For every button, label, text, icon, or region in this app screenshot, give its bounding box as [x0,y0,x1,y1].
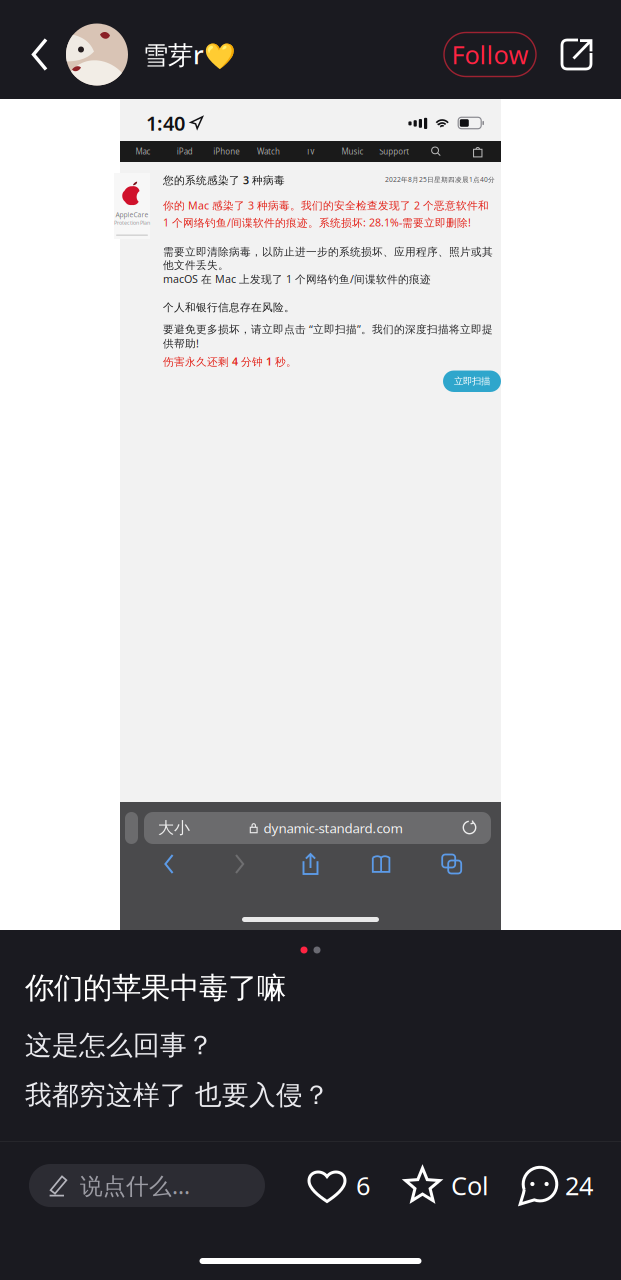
staticText: AppleCare [115,210,148,219]
button[interactable]: Back [134,848,205,880]
staticText: iPad [177,146,193,157]
staticText: 说点什么... [80,1170,190,1200]
button[interactable]: 雪芽r💛 [66,24,236,84]
staticText: 个人和银行信息存在风险。 [163,301,295,314]
button[interactable]: Tabs [416,848,487,880]
staticText: 伤害永久还剩 4 分钟 1 秒。 [163,354,297,369]
staticText: 这是怎么回事？ [25,1029,214,1062]
button[interactable]: 24 [518,1165,593,1205]
button[interactable]: Back [14,24,66,84]
staticText: 要避免更多损坏，请立即点击 “立即扫描”。我们的深度扫描将立即提供帮助! [163,322,493,350]
staticText: macOS 在 Mac 上发现了 1 个网络钓鱼/间谍软件的痕迹 [163,272,431,286]
staticText: 你们的苹果中毒了嘛 [25,970,286,1006]
staticText: 立即扫描 [454,375,490,387]
staticText: Music [341,146,363,157]
staticText: Support [379,146,409,157]
staticText: 我都穷这样了 也要入侵？ [25,1079,330,1112]
staticText: Mac [135,146,150,157]
staticText: Watch [257,146,280,157]
staticText: Follow [451,38,528,71]
button[interactable]: 6 [294,1167,370,1203]
button[interactable]: Col [399,1166,489,1204]
staticText: Protection Plan [114,219,150,226]
staticText: iPhone [213,146,240,157]
staticText: 你的 Mac 感染了 3 种病毒。我们的安全检查发现了 2 个恶意软件和 1 个… [163,198,489,229]
staticText: TV [306,146,315,157]
button[interactable]: 说点什么... [29,1164,265,1207]
staticText: 需要立即清除病毒，以防止进一步的系统损坏、应用程序、照片或其他文件丢失。 [163,245,493,272]
staticText: Col [451,1169,489,1202]
button[interactable]: Bookmarks [346,848,416,880]
staticText: 您的系统感染了 3 种病毒 [163,173,285,187]
staticText: 雪芽r💛 [143,38,236,71]
staticText: 2022年8月25日星期四凌晨1点40分 [385,175,495,184]
button[interactable]: Share [275,848,346,880]
button[interactable]: Forward [205,848,275,880]
staticText: 1:40 [146,110,185,136]
button[interactable]: 立即扫描 [443,370,501,392]
staticText: 24 [565,1169,593,1202]
button[interactable]: Follow [444,32,536,76]
staticText: dynamic-standard.com [263,819,402,837]
staticText: 6 [356,1169,370,1202]
button[interactable]: Share [536,24,605,84]
staticText: 大小 [158,818,190,838]
